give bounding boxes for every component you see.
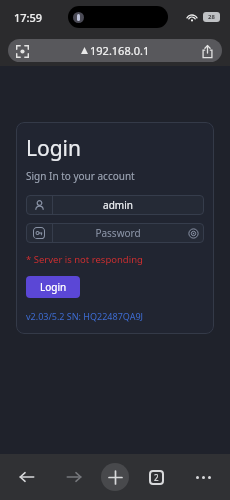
button[interactable]: Search with Lens [13, 42, 31, 60]
staticText: * Server is not responding [26, 253, 143, 266]
button[interactable]: v2.03/5.2 SN: HQ22487QA9J [26, 310, 144, 322]
button[interactable]: New tab [101, 463, 129, 491]
button[interactable]: admin [26, 195, 204, 215]
staticText: 17:59 [14, 10, 43, 25]
staticText: Password [95, 226, 141, 240]
button[interactable]: Show password [182, 223, 204, 243]
staticText: Sign In to your account [26, 169, 135, 183]
staticText: 28 [208, 13, 215, 21]
staticText: Login [40, 280, 67, 294]
button[interactable]: Back [7, 457, 47, 497]
button[interactable]: Search with Lens [8, 39, 222, 62]
button[interactable]: More options [183, 457, 223, 497]
button[interactable]: Forward [54, 457, 94, 497]
staticText: admin [103, 198, 133, 212]
button[interactable]: Tabs, 2 open [136, 457, 176, 497]
button[interactable]: Share [199, 43, 215, 59]
staticText: 192.168.0.1 [90, 43, 150, 58]
staticText: Login [26, 134, 82, 163]
button[interactable]: Login [26, 276, 80, 298]
button[interactable]: Password [26, 223, 204, 243]
staticText: 2 [154, 472, 159, 483]
